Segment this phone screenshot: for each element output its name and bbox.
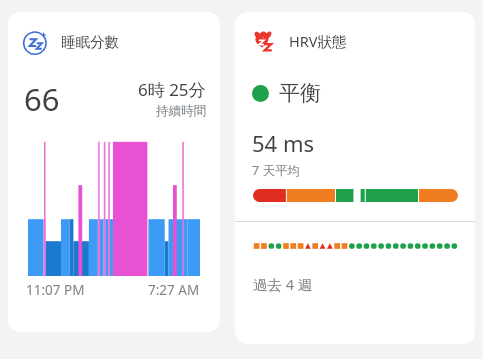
button[interactable]: HRV status	[235, 12, 475, 344]
staticText: 66	[24, 78, 60, 120]
staticText: 平衡	[279, 80, 321, 106]
staticText: 持續時間	[156, 103, 206, 119]
staticText: 7:27 AM	[148, 281, 200, 299]
staticText: 6時 25分	[138, 78, 206, 101]
other: Sleep score	[22, 28, 50, 56]
button[interactable]: Sleep score	[8, 12, 220, 332]
staticText: 11:07 PM	[26, 281, 85, 299]
staticText: 54 ms	[252, 128, 314, 158]
other: HRV status	[251, 28, 277, 54]
staticText: HRV狀態	[289, 31, 347, 51]
staticText: 過去 4 週	[253, 274, 313, 294]
staticText: 睡眠分數	[61, 33, 119, 51]
staticText: 7 天平均	[252, 162, 300, 179]
